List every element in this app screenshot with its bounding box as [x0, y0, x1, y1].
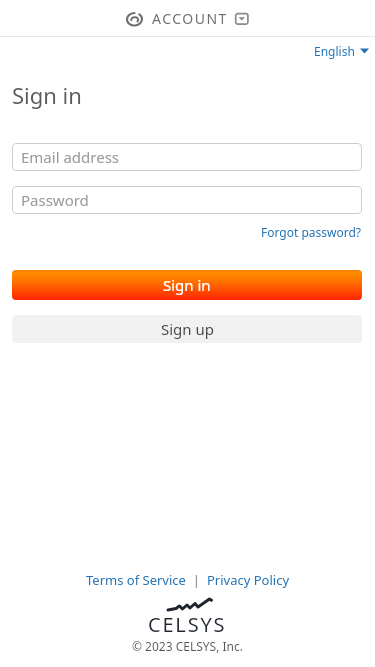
staticText: Sign in	[163, 275, 211, 295]
staticText: Sign up	[161, 319, 214, 339]
staticText: © 2023 CELSYS, Inc.	[132, 638, 243, 654]
staticText: Forgot password?	[261, 224, 362, 240]
staticText: Privacy Policy	[207, 571, 290, 589]
button[interactable]: Email address	[12, 143, 362, 171]
button[interactable]: Privacy Policy	[207, 571, 290, 589]
staticText: English	[314, 43, 355, 59]
button[interactable]: Sign in	[12, 270, 362, 300]
staticText: Terms of Service	[86, 571, 186, 589]
staticText: Password	[21, 190, 89, 210]
staticText: Sign in	[12, 80, 82, 110]
staticText: CELSYS	[148, 611, 227, 638]
button[interactable]: ACCOUNT	[126, 9, 249, 28]
button[interactable]: English	[314, 43, 369, 59]
button[interactable]: Sign up	[12, 315, 362, 343]
staticText: ACCOUNT	[152, 9, 228, 28]
staticText: Email address	[21, 147, 120, 167]
button[interactable]: Password	[12, 186, 362, 214]
button[interactable]: Forgot password?	[261, 224, 362, 240]
staticText: |	[186, 571, 207, 589]
button[interactable]: Terms of Service	[86, 571, 186, 589]
